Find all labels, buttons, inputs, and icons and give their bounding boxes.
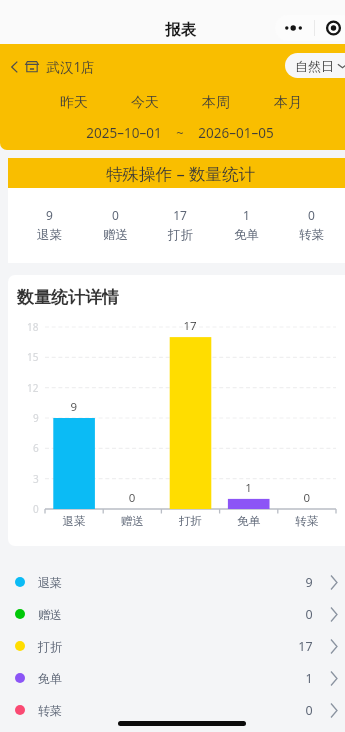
button[interactable]: 特殊操作 – 数量统计 xyxy=(8,158,345,188)
staticText: ~ xyxy=(176,124,184,142)
staticText: 0 xyxy=(305,702,313,719)
button[interactable]: 自然日 xyxy=(285,53,345,78)
staticText: 0 xyxy=(112,207,119,223)
staticText: 转菜 xyxy=(299,227,324,243)
staticText: 退菜 xyxy=(37,227,62,243)
staticText: 免单 xyxy=(234,227,259,243)
button[interactable]: 免单 xyxy=(0,662,345,694)
staticText: 报表 xyxy=(165,20,196,40)
staticText: 0 xyxy=(305,606,313,623)
button[interactable]: 武汉1店 xyxy=(8,54,98,79)
button[interactable]: 0 xyxy=(87,207,143,243)
button[interactable]: 转菜 xyxy=(0,694,345,726)
button[interactable]: 0 xyxy=(283,207,339,243)
staticText: 特殊操作 – 数量统计 xyxy=(106,162,255,185)
staticText: 自然日 xyxy=(295,58,334,74)
button[interactable]: 退菜 xyxy=(0,566,345,598)
staticText: 本周 xyxy=(202,94,230,112)
staticText: 昨天 xyxy=(60,94,88,112)
button[interactable]: 9 xyxy=(21,207,77,243)
button[interactable]: Close mini program xyxy=(315,15,345,41)
staticText: 赠送 xyxy=(103,227,128,243)
button[interactable]: 17 xyxy=(152,207,208,243)
staticText: 1 xyxy=(243,207,250,223)
button[interactable]: 本周 xyxy=(187,89,245,117)
staticText: 打折 xyxy=(38,639,62,654)
button[interactable]: More options xyxy=(275,15,313,41)
staticText: 9 xyxy=(305,574,313,591)
staticText: 打折 xyxy=(168,227,193,243)
button[interactable]: 本月 xyxy=(259,89,317,117)
button[interactable]: 昨天 xyxy=(45,89,103,117)
staticText: 本月 xyxy=(274,94,302,112)
staticText: 17 xyxy=(173,207,187,223)
staticText: 武汉1店 xyxy=(46,58,95,76)
staticText: 2026–01–05 xyxy=(198,124,274,142)
staticText: 今天 xyxy=(131,94,159,112)
button[interactable]: 1 xyxy=(218,207,274,243)
staticText: 赠送 xyxy=(38,607,62,622)
staticText: 9 xyxy=(46,207,53,223)
staticText: 数量统计详情 xyxy=(17,287,119,308)
button[interactable]: 今天 xyxy=(116,89,174,117)
button[interactable]: 打折 xyxy=(0,630,345,662)
staticText: 退菜 xyxy=(38,575,62,590)
staticText: 17 xyxy=(298,638,313,655)
staticText: 转菜 xyxy=(38,703,62,718)
staticText: 免单 xyxy=(38,671,62,686)
button[interactable]: 赠送 xyxy=(0,598,345,630)
staticText: 0 xyxy=(308,207,315,223)
staticText: 2025–10–01 xyxy=(86,124,162,142)
staticText: 1 xyxy=(305,670,313,687)
